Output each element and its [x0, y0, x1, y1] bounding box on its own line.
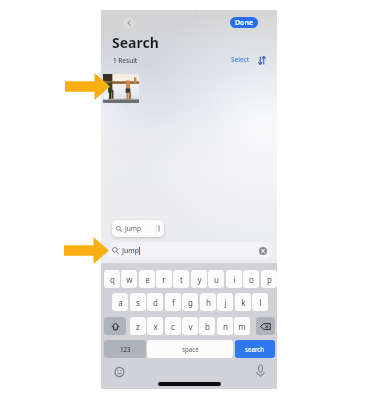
- button[interactable]: g: [182, 293, 198, 311]
- button[interactable]: c: [165, 317, 181, 335]
- button[interactable]: Emoji keyboard: [113, 367, 126, 377]
- staticText: l: [259, 297, 262, 308]
- button[interactable]: n: [217, 317, 233, 335]
- button[interactable]: u: [208, 270, 224, 288]
- button[interactable]: p: [261, 270, 277, 288]
- button[interactable]: l: [252, 293, 268, 311]
- button[interactable]: e: [139, 270, 155, 288]
- staticText: p: [267, 274, 272, 285]
- button[interactable]: d: [147, 293, 163, 311]
- button[interactable]: s: [130, 293, 146, 311]
- staticText: 1 Result: [113, 56, 138, 65]
- staticText: c: [171, 321, 175, 332]
- button[interactable]: f: [165, 293, 181, 311]
- staticText: z: [136, 321, 140, 332]
- button[interactable]: h: [200, 293, 216, 311]
- button[interactable]: q: [104, 270, 120, 288]
- staticText: 123: [120, 345, 131, 353]
- staticText: search: [245, 345, 265, 353]
- button[interactable]: Jump: [107, 242, 272, 259]
- button[interactable]: b: [199, 317, 215, 335]
- staticText: d: [153, 297, 158, 308]
- staticText: Search: [112, 33, 159, 52]
- button[interactable]: r: [156, 270, 172, 288]
- button[interactable]: t: [173, 270, 189, 288]
- button[interactable]: x: [147, 317, 163, 335]
- staticText: b: [205, 321, 210, 332]
- button[interactable]: a: [112, 293, 128, 311]
- button[interactable]: v: [182, 317, 198, 335]
- staticText: Select: [231, 55, 250, 64]
- button[interactable]: j: [217, 293, 233, 311]
- staticText: Jump: [122, 246, 139, 255]
- staticText: k: [241, 297, 246, 308]
- button[interactable]: Back: [123, 17, 135, 29]
- button[interactable]: m: [234, 317, 250, 335]
- staticText: u: [214, 274, 219, 285]
- button[interactable]: space: [147, 340, 233, 358]
- staticText: Done: [235, 18, 254, 28]
- staticText: m: [238, 321, 246, 332]
- staticText: o: [249, 274, 254, 285]
- button[interactable]: Delete: [256, 317, 275, 335]
- button[interactable]: Shift: [104, 317, 126, 335]
- button[interactable]: Sort: [258, 56, 266, 65]
- button[interactable]: Dictate: [256, 364, 265, 377]
- staticText: g: [188, 297, 193, 308]
- staticText: f: [172, 297, 175, 308]
- staticText: w: [126, 274, 133, 285]
- button[interactable]: o: [243, 270, 259, 288]
- staticText: a: [118, 297, 123, 308]
- button[interactable]: Select: [231, 55, 250, 64]
- staticText: space: [182, 345, 199, 353]
- button[interactable]: w: [121, 270, 137, 288]
- staticText: Jump: [125, 224, 142, 233]
- button[interactable]: search: [235, 340, 275, 358]
- button[interactable]: Jump: [112, 220, 164, 237]
- staticText: v: [188, 321, 193, 332]
- staticText: y: [197, 274, 202, 285]
- button[interactable]: k: [235, 293, 251, 311]
- staticText: r: [162, 274, 166, 285]
- staticText: t: [180, 274, 183, 285]
- staticText: e: [145, 274, 150, 285]
- button[interactable]: z: [130, 317, 146, 335]
- button[interactable]: i: [226, 270, 242, 288]
- staticText: i: [233, 274, 236, 285]
- staticText: n: [223, 321, 228, 332]
- button[interactable]: y: [191, 270, 207, 288]
- staticText: q: [110, 274, 115, 285]
- button[interactable]: Done: [230, 17, 258, 28]
- staticText: x: [153, 321, 158, 332]
- button[interactable]: Photo search result: [103, 74, 139, 103]
- staticText: h: [206, 297, 211, 308]
- staticText: s: [136, 297, 140, 308]
- button[interactable]: 123: [104, 340, 146, 358]
- staticText: j: [224, 297, 227, 308]
